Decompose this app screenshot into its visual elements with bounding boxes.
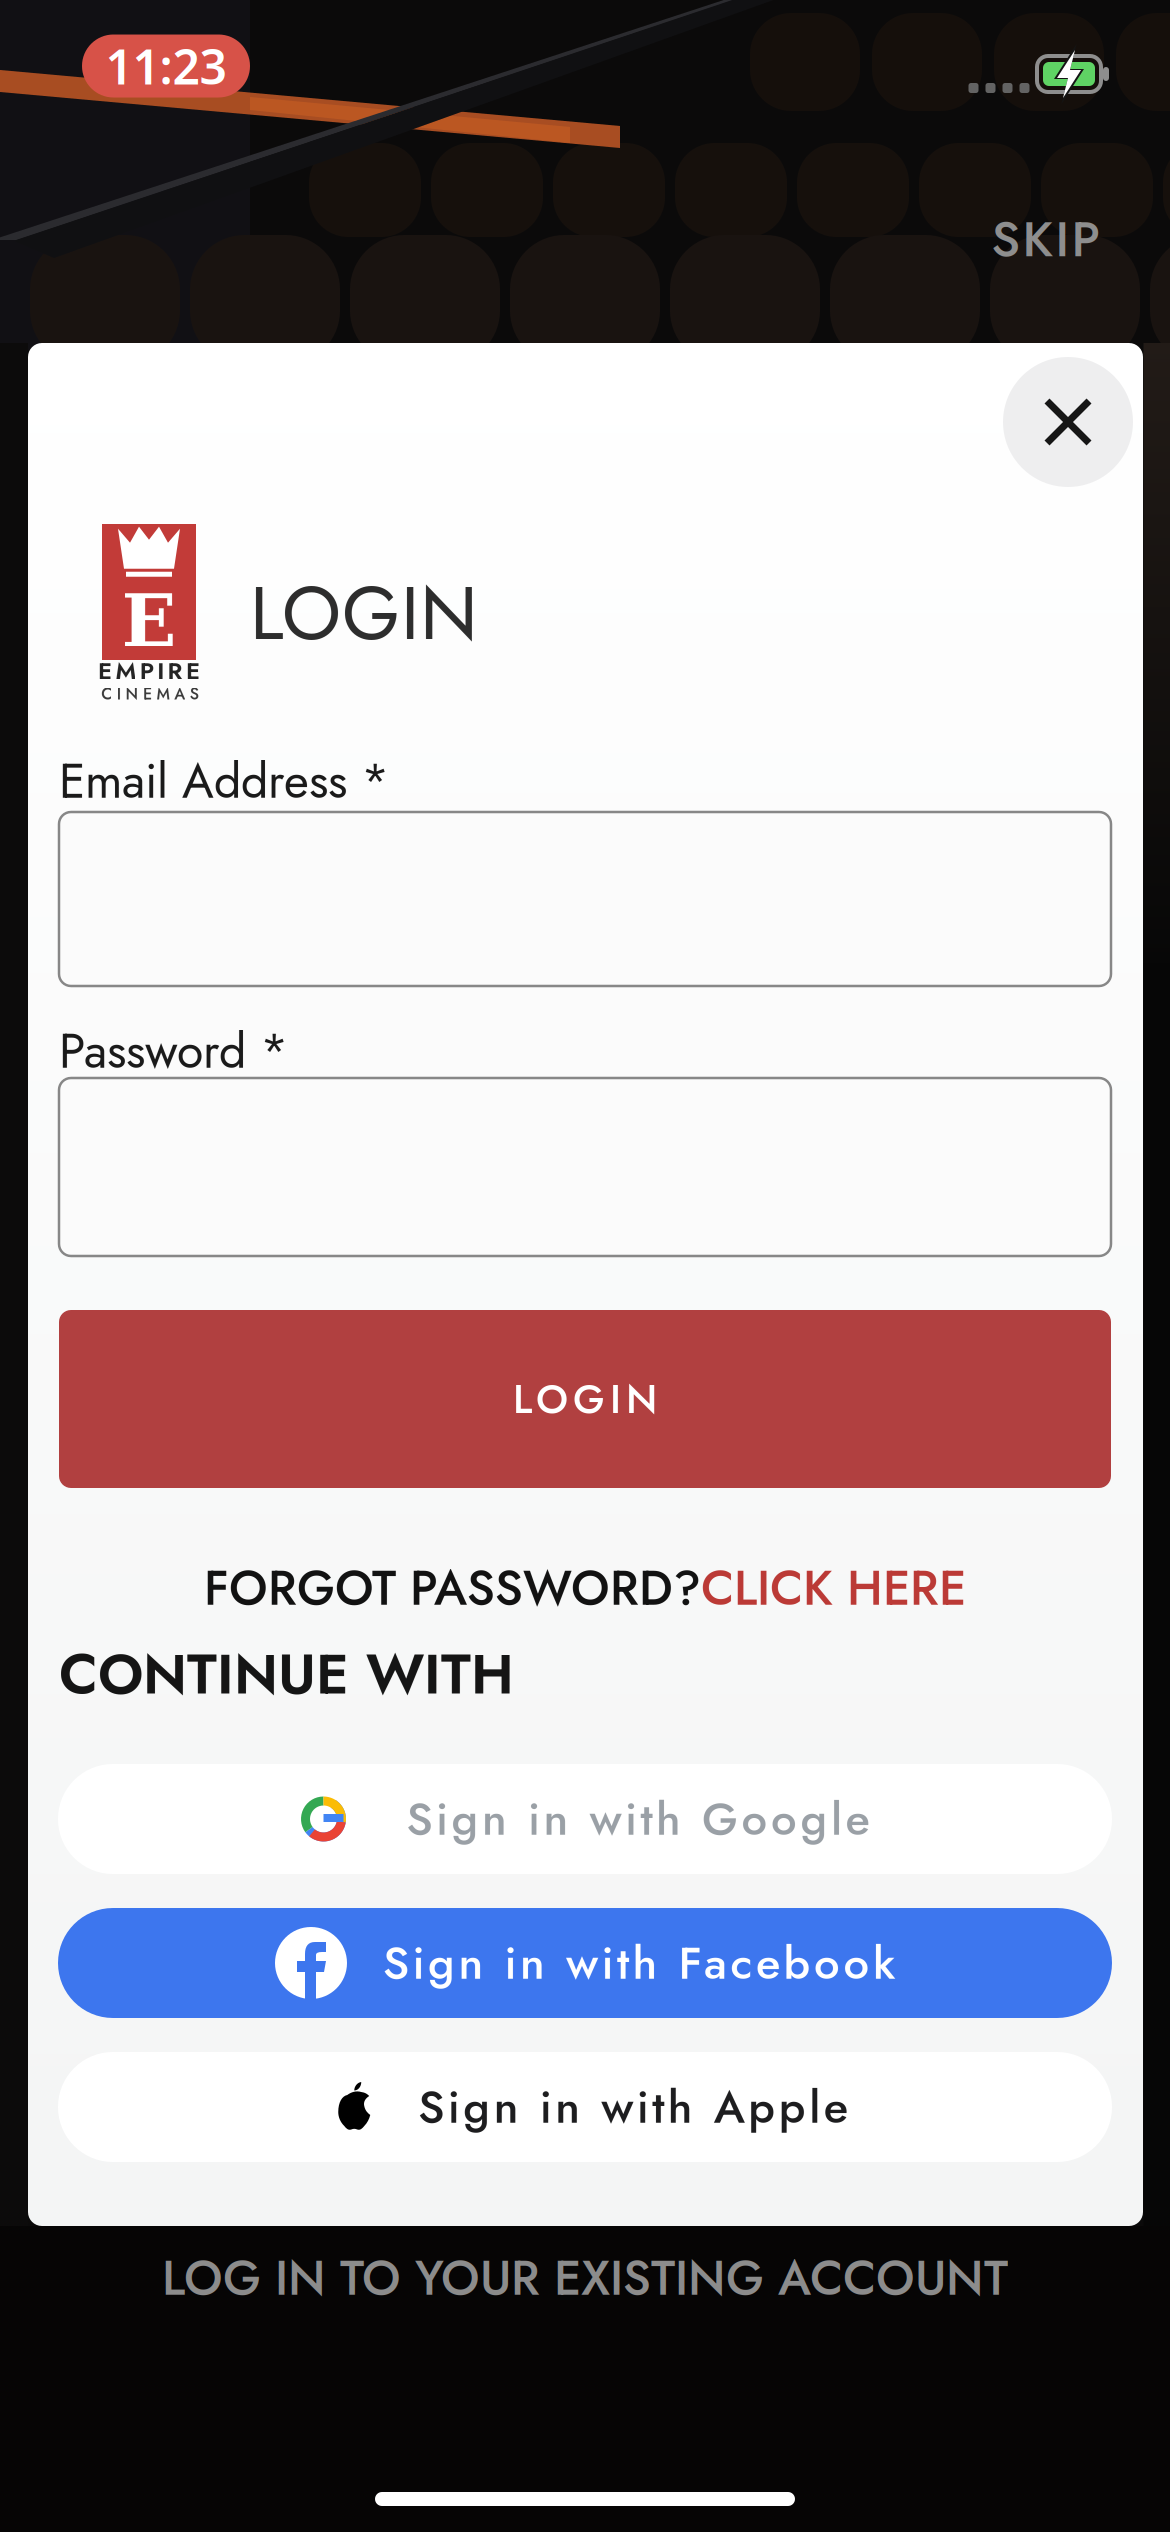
button[interactable]: SKIP <box>991 203 1100 275</box>
button[interactable]: Sign in with Apple <box>58 2052 1112 2162</box>
staticText: M <box>157 682 170 705</box>
button[interactable]: Sign in with Google <box>58 1764 1112 1874</box>
staticText: Email Address * <box>59 746 389 816</box>
button[interactable]: Sign in with Facebook <box>58 1908 1112 2018</box>
staticText: LOGIN <box>513 1370 657 1428</box>
staticText: Sign in with Google <box>406 1786 869 1852</box>
staticText: Password * <box>59 1016 288 1086</box>
staticText: P <box>140 654 154 688</box>
staticText: R <box>168 654 183 688</box>
staticText: 11:23 <box>105 34 226 98</box>
button[interactable]: LOG IN TO YOUR EXISTING ACCOUNT <box>162 2243 1008 2313</box>
staticText: E <box>143 682 152 705</box>
staticText: FORGOT PASSWORD? <box>204 1553 701 1623</box>
staticText: A <box>174 682 185 705</box>
staticText: N <box>125 682 138 705</box>
button[interactable]: CLICK HERE <box>701 1553 966 1623</box>
staticText: SKIP <box>991 203 1100 275</box>
staticText: E <box>121 579 176 663</box>
staticText: I <box>157 654 164 688</box>
staticText: CONTINUE WITH <box>59 1633 514 1714</box>
staticText: LOGIN <box>250 559 478 667</box>
staticText: S <box>190 682 199 705</box>
staticText: M <box>115 654 136 688</box>
staticText: C <box>101 682 112 705</box>
staticText: Sign in with Apple <box>418 2074 848 2140</box>
button[interactable]: LOGIN <box>59 1310 1111 1488</box>
staticText: E <box>98 654 112 688</box>
staticText: Sign in with Facebook <box>383 1930 895 1996</box>
staticText: E <box>186 654 200 688</box>
staticText: LOG IN TO YOUR EXISTING ACCOUNT <box>162 2243 1008 2313</box>
staticText: I <box>117 682 121 705</box>
staticText: CLICK HERE <box>701 1553 966 1623</box>
button[interactable]: Close <box>1003 357 1133 487</box>
